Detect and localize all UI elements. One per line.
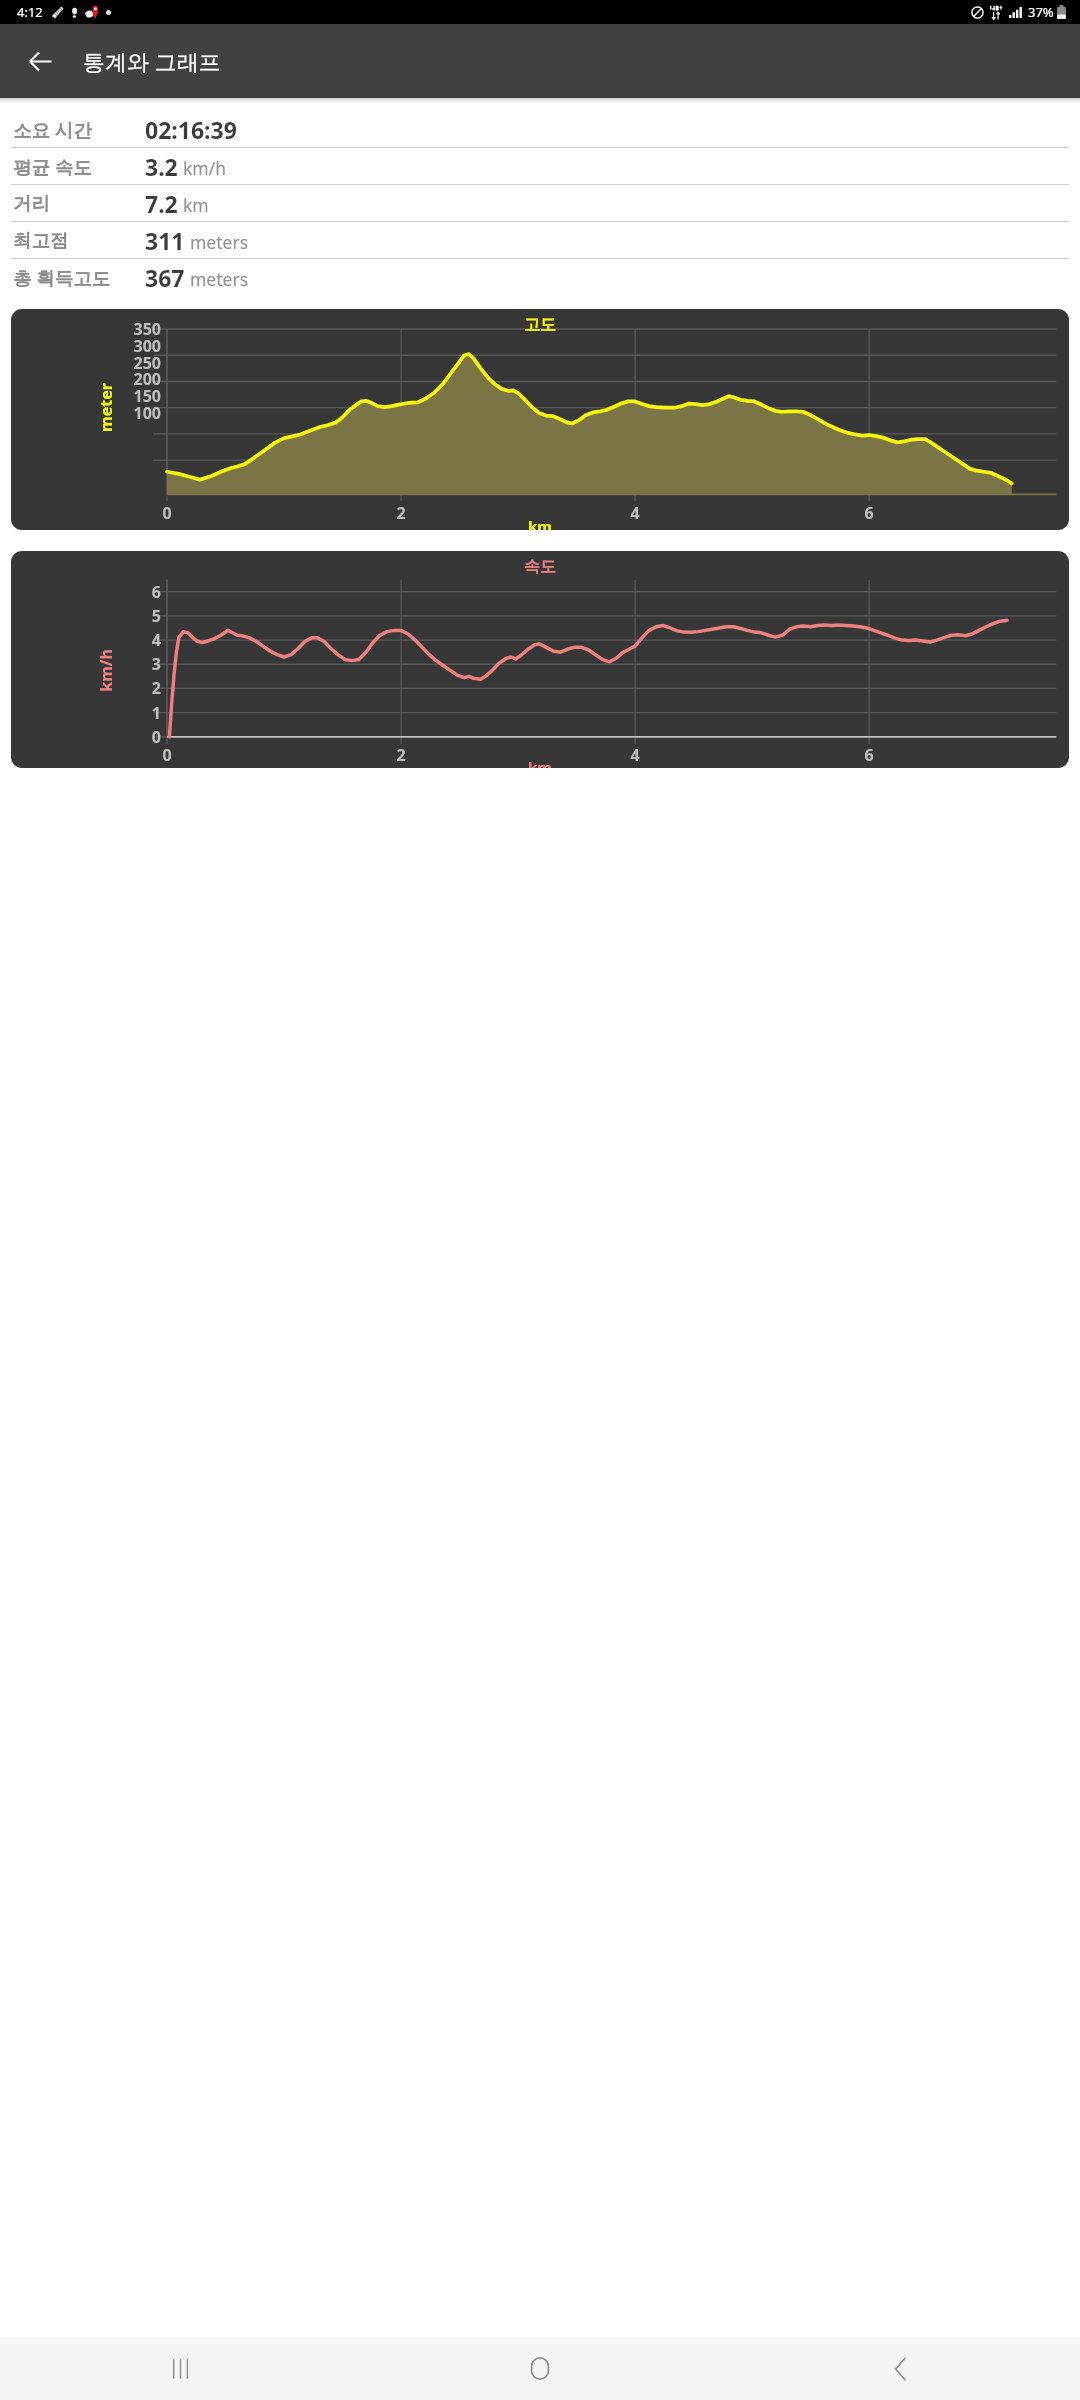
- staticText: 250: [133, 352, 161, 374]
- staticText: 1: [151, 702, 161, 724]
- staticText: 총 획득고도: [13, 265, 111, 290]
- staticText: 6: [864, 502, 874, 524]
- staticText: 3.2: [145, 151, 178, 182]
- staticText: 7.2: [145, 188, 178, 219]
- staticText: meter: [95, 383, 117, 432]
- staticText: 350: [133, 318, 161, 340]
- button[interactable]: 거리: [0, 185, 1080, 221]
- staticText: 고도: [524, 315, 556, 335]
- staticText: 4: [151, 629, 161, 651]
- button[interactable]: 최고점: [0, 222, 1080, 258]
- staticText: 150: [133, 385, 161, 407]
- staticText: 6: [151, 581, 161, 603]
- button[interactable]: Speed chart: [11, 551, 1069, 768]
- staticText: 200: [133, 368, 161, 390]
- staticText: 0: [162, 502, 172, 524]
- button[interactable]: Home: [490, 2337, 590, 2400]
- staticText: km: [528, 757, 552, 768]
- staticText: 평균 속도: [13, 154, 92, 179]
- staticText: 거리: [13, 192, 50, 215]
- staticText: 2: [151, 677, 161, 699]
- button[interactable]: Back: [850, 2337, 950, 2400]
- staticText: 4:12: [17, 3, 43, 21]
- staticText: 37%: [1028, 3, 1054, 21]
- staticText: 2: [396, 744, 406, 766]
- staticText: 02:16:39: [145, 114, 237, 145]
- button[interactable]: Elevation chart: [11, 309, 1069, 530]
- staticText: 100: [133, 402, 161, 424]
- staticText: km/h: [95, 649, 117, 692]
- staticText: 0: [162, 744, 172, 766]
- staticText: 367: [145, 262, 185, 293]
- button[interactable]: 총 획득고도: [0, 259, 1080, 295]
- staticText: 통계와 그래프: [83, 46, 221, 76]
- staticText: 300: [133, 335, 161, 357]
- staticText: 속도: [524, 557, 556, 577]
- staticText: 최고점: [13, 229, 69, 252]
- staticText: 4: [630, 744, 640, 766]
- staticText: 소요 시간: [13, 117, 92, 142]
- staticText: 0: [151, 726, 161, 748]
- staticText: meters: [190, 267, 249, 291]
- staticText: km: [528, 516, 552, 530]
- staticText: meters: [190, 230, 249, 254]
- button[interactable]: 평균 속도: [0, 148, 1080, 184]
- button[interactable]: Back: [16, 37, 64, 85]
- staticText: 4: [630, 502, 640, 524]
- staticText: 311: [145, 225, 185, 256]
- staticText: 3: [151, 653, 161, 675]
- staticText: 5: [151, 605, 161, 627]
- button[interactable]: Recent apps: [130, 2337, 230, 2400]
- staticText: 2: [396, 502, 406, 524]
- staticText: km/h: [183, 156, 227, 180]
- button[interactable]: 소요 시간: [0, 111, 1080, 147]
- staticText: km: [183, 193, 209, 217]
- staticText: 6: [864, 744, 874, 766]
